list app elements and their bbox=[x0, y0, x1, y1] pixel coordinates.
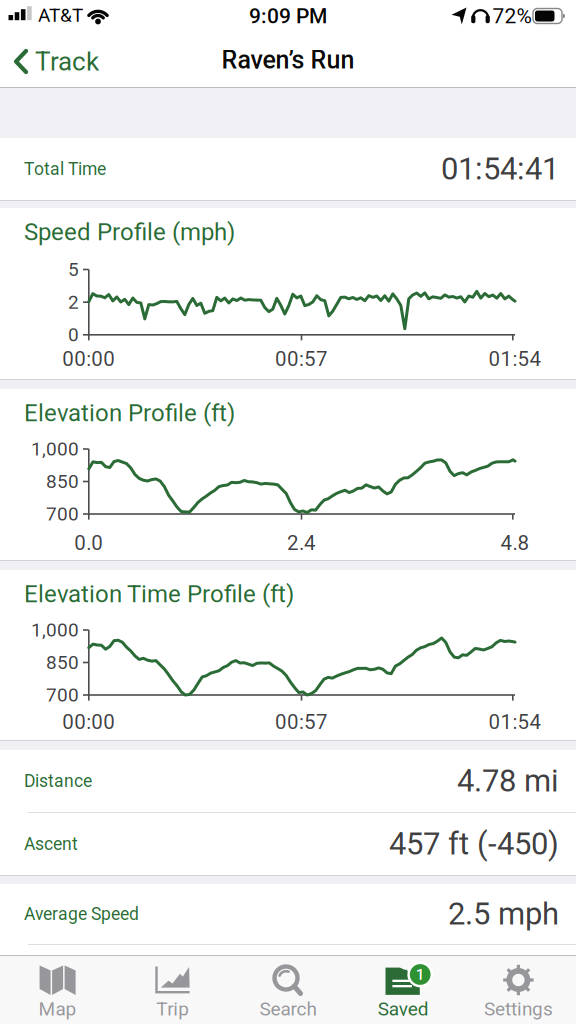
button[interactable]: Search bbox=[230, 956, 346, 1024]
staticText: 850 bbox=[46, 651, 79, 674]
staticText: 72% bbox=[492, 4, 531, 28]
staticText: 00:57 bbox=[275, 710, 328, 734]
button[interactable]: Back to Track bbox=[0, 36, 99, 87]
staticText: 700 bbox=[46, 684, 79, 706]
staticText: 2.4 bbox=[287, 531, 316, 555]
staticText: 2 bbox=[68, 291, 79, 313]
staticText: AT&T bbox=[38, 4, 83, 26]
staticText: 4.78 mi bbox=[457, 763, 559, 799]
button[interactable]: Saved bbox=[346, 956, 461, 1024]
staticText: 1 bbox=[416, 965, 425, 984]
staticText: Total Time bbox=[24, 159, 106, 179]
button[interactable]: Map bbox=[0, 956, 115, 1024]
staticText: Elevation Time Profile (ft) bbox=[24, 580, 294, 608]
staticText: 0 bbox=[68, 324, 79, 346]
staticText: 00:00 bbox=[62, 347, 115, 371]
staticText: 00:00 bbox=[62, 710, 115, 734]
staticText: 01:54 bbox=[488, 710, 541, 734]
staticText: Elevation Profile (ft) bbox=[24, 399, 235, 427]
staticText: 01:54:41 bbox=[441, 151, 559, 187]
staticText: 4.8 bbox=[500, 531, 529, 555]
staticText: Settings bbox=[484, 998, 553, 1020]
staticText: Speed Profile (mph) bbox=[24, 218, 235, 246]
button[interactable]: Trip bbox=[115, 956, 230, 1024]
staticText: Average Speed bbox=[24, 904, 139, 924]
staticText: 5 bbox=[68, 258, 79, 281]
staticText: Map bbox=[39, 998, 77, 1020]
button[interactable]: Settings bbox=[461, 956, 576, 1024]
staticText: Raven’s Run bbox=[221, 45, 354, 75]
staticText: Trip bbox=[156, 998, 189, 1020]
staticText: Distance bbox=[24, 771, 92, 791]
staticText: Search bbox=[259, 998, 316, 1020]
staticText: 2.5 mph bbox=[448, 896, 559, 932]
staticText: 9:09 PM bbox=[249, 4, 327, 28]
staticText: 01:54 bbox=[488, 347, 541, 371]
staticText: Saved bbox=[378, 998, 429, 1020]
staticText: 00:57 bbox=[275, 347, 328, 371]
staticText: Track bbox=[35, 46, 99, 77]
staticText: 1,000 bbox=[31, 619, 79, 641]
staticText: 700 bbox=[46, 503, 79, 525]
staticText: 1,000 bbox=[31, 438, 79, 460]
staticText: 850 bbox=[46, 470, 79, 493]
staticText: Ascent bbox=[24, 834, 78, 854]
staticText: 0.0 bbox=[74, 531, 103, 555]
staticText: 457 ft (-450) bbox=[389, 826, 559, 862]
